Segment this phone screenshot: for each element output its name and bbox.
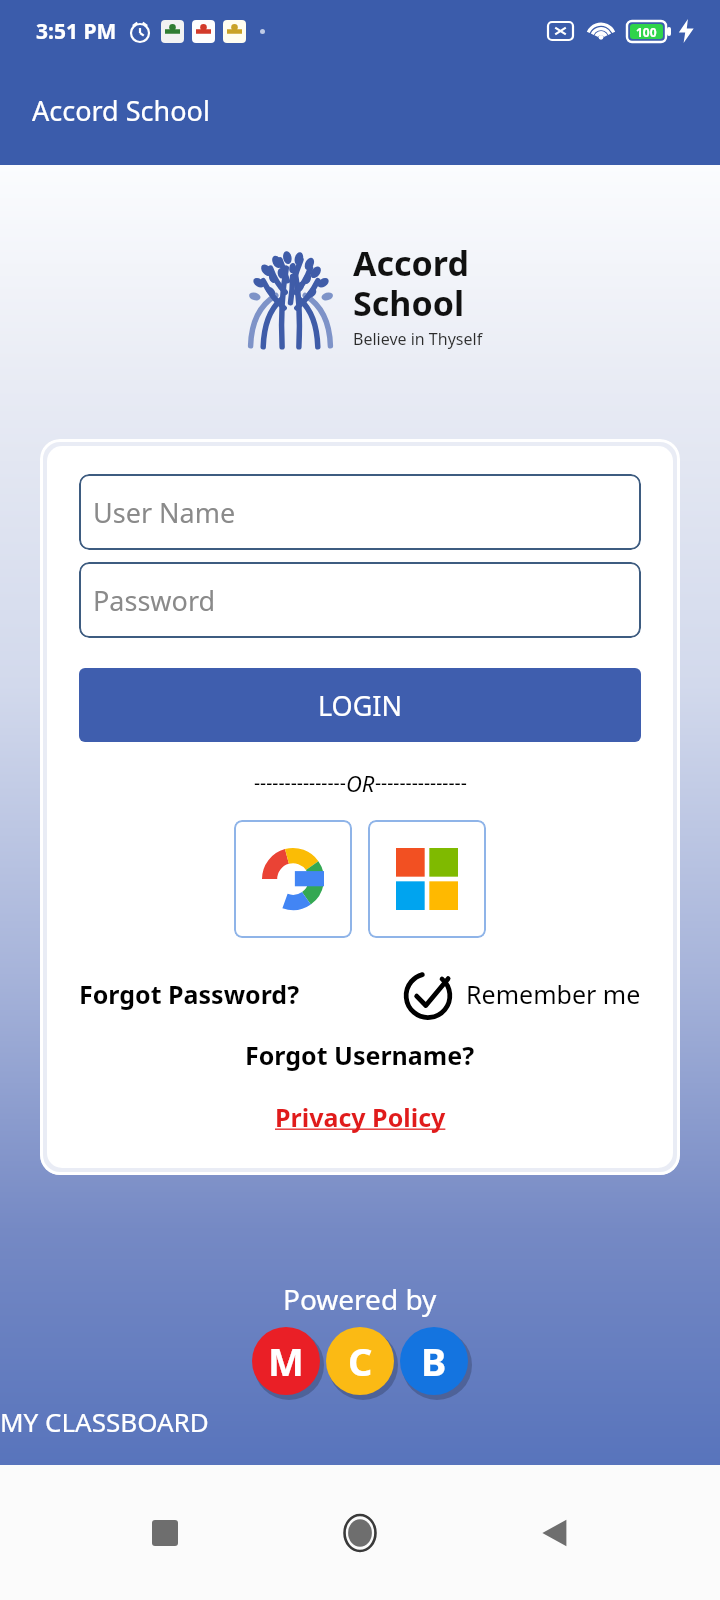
staticText: --------------- [375, 770, 467, 796]
staticText: School [353, 280, 465, 326]
staticText: 3:51 PM [36, 17, 117, 46]
staticText: LOGIN [318, 687, 403, 724]
button[interactable]: LOGIN [79, 668, 641, 742]
button[interactable]: Back [525, 1503, 585, 1563]
staticText: C [348, 1335, 373, 1387]
button[interactable]: Remember me [400, 966, 641, 1022]
staticText: MY CLASSBOARD [0, 1404, 720, 1439]
staticText: OR [346, 768, 375, 798]
staticText: User Name [93, 494, 236, 531]
staticText: Remember me [466, 977, 641, 1011]
staticText: B [421, 1335, 447, 1387]
staticText: Believe in Thyself [353, 328, 483, 350]
button[interactable]: User Name [79, 474, 641, 550]
button[interactable]: Forgot Username? [245, 1038, 475, 1072]
button[interactable]: Home [330, 1503, 390, 1563]
button[interactable]: Sign in with Microsoft [368, 820, 486, 938]
staticText: Password [93, 582, 216, 619]
staticText: --------------- [254, 770, 346, 796]
staticText: M [268, 1335, 304, 1387]
staticText: Accord School [32, 92, 210, 129]
button[interactable]: Privacy Policy [275, 1100, 446, 1134]
button[interactable]: Forgot Password? [79, 977, 300, 1011]
button[interactable]: Password [79, 562, 641, 638]
staticText: 100 [636, 24, 657, 40]
staticText: Accord [353, 240, 469, 286]
button[interactable]: Recents [135, 1503, 195, 1563]
staticText: Powered by [283, 1280, 437, 1318]
button[interactable]: Sign in with Google [234, 820, 352, 938]
